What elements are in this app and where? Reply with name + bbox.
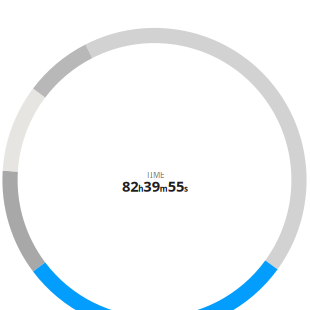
staticText: 39 bbox=[143, 176, 160, 196]
staticText: h bbox=[138, 183, 143, 194]
staticText: TIME bbox=[146, 170, 164, 180]
staticText: 55 bbox=[168, 176, 184, 196]
button[interactable]: Elapsed time 82 hours 39 minutes 55 seco… bbox=[0, 0, 310, 310]
staticText: s bbox=[184, 183, 188, 194]
staticText: 82 bbox=[122, 176, 138, 196]
staticText: m bbox=[160, 183, 168, 194]
